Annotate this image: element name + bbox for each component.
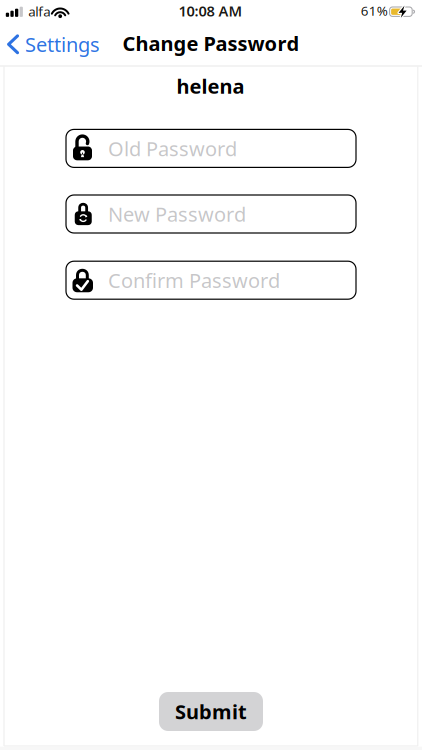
staticText: alfa [28, 2, 50, 20]
staticText: 61% [361, 2, 388, 19]
staticText: Submit [175, 698, 247, 725]
button[interactable]: Submit [159, 692, 263, 731]
staticText: Confirm Password [108, 267, 280, 293]
button[interactable]: New Password [66, 195, 356, 233]
staticText: New Password [108, 201, 246, 227]
button[interactable]: Old Password [66, 129, 356, 167]
button[interactable]: Confirm Password [66, 261, 356, 299]
staticText: 10:08 AM [178, 1, 242, 21]
staticText: helena [176, 73, 244, 99]
staticText: Settings [25, 31, 100, 58]
staticText: Old Password [108, 135, 237, 162]
button[interactable]: Back to Settings [7, 31, 167, 58]
staticText: Change Password [122, 30, 299, 56]
